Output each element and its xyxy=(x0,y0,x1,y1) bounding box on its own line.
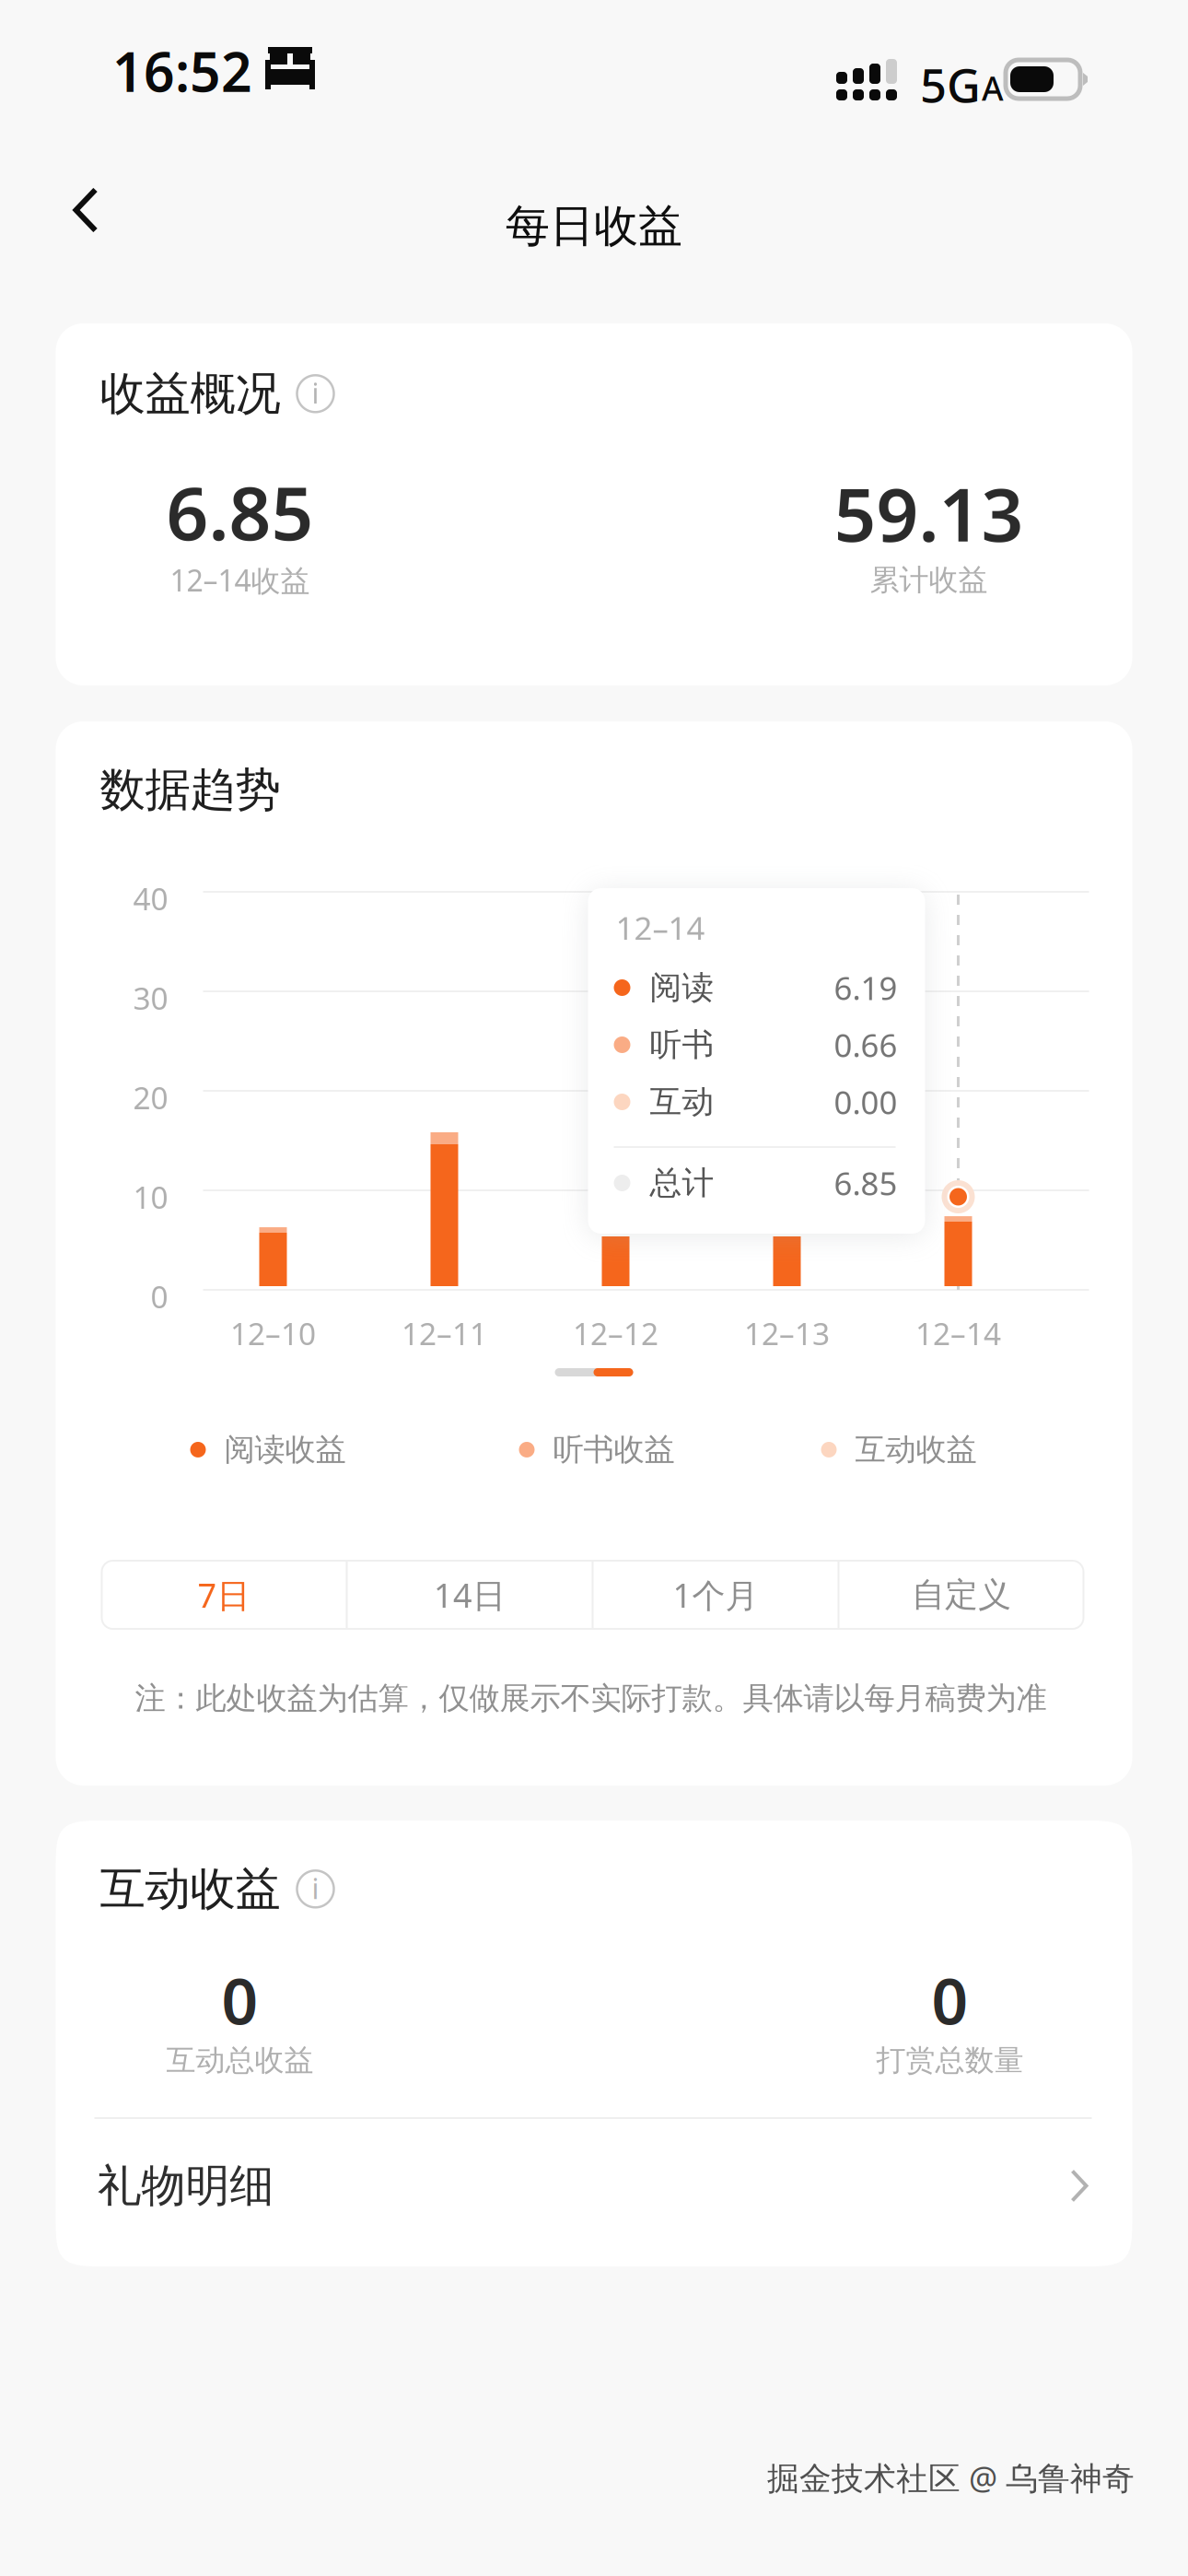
button[interactable]: 14日 xyxy=(348,1561,592,1629)
staticText: 礼物明细 xyxy=(97,2159,274,2213)
button[interactable]: 互动收益说明 xyxy=(297,1871,334,1907)
staticText: 每日收益 xyxy=(506,199,682,253)
staticText: 互动收益 xyxy=(100,1861,280,1917)
staticText: 总计 xyxy=(650,1163,714,1203)
staticText: 0 xyxy=(221,1957,258,2042)
staticText: 12–13 xyxy=(744,1313,830,1354)
staticText: 数据趋势 xyxy=(100,762,280,818)
staticText: 0 xyxy=(151,1276,168,1317)
button[interactable]: 7日 xyxy=(102,1561,346,1629)
staticText: 12–14收益 xyxy=(170,560,310,600)
staticText: 收益概况 xyxy=(100,366,280,422)
staticText: 0.66 xyxy=(834,1024,897,1066)
staticText: 打赏总数量 xyxy=(876,2042,1024,2078)
button[interactable]: 收益概况说明 xyxy=(297,375,334,412)
staticText: 59.13 xyxy=(834,464,1024,562)
staticText: 16:52 xyxy=(112,35,252,107)
staticText: 6.19 xyxy=(834,966,897,1009)
staticText: 0 xyxy=(932,1957,968,2042)
staticText: 12–12 xyxy=(573,1313,658,1354)
staticText: 阅读 xyxy=(650,968,714,1007)
staticText: 0.00 xyxy=(834,1081,897,1123)
staticText: 12–10 xyxy=(230,1313,316,1354)
button[interactable]: 礼物明细 xyxy=(56,2119,1132,2253)
staticText: 12–14 xyxy=(616,907,705,949)
staticText: 40 xyxy=(133,878,168,919)
staticText: 互动总收益 xyxy=(166,2042,314,2078)
staticText: 注：此处收益为估算，仅做展示不实际打款。具体请以每月稿费为准 xyxy=(135,1680,1047,1717)
staticText: 5G xyxy=(920,53,981,115)
staticText: 1个月 xyxy=(673,1573,758,1617)
button[interactable]: 返回 xyxy=(38,162,134,258)
staticText: 听书收益 xyxy=(553,1431,675,1468)
staticText: 12–11 xyxy=(402,1313,487,1354)
staticText: i xyxy=(312,374,319,411)
staticText: 累计收益 xyxy=(870,562,988,598)
staticText: 互动收益 xyxy=(855,1431,977,1468)
staticText: 30 xyxy=(133,978,168,1018)
staticText: 6.85 xyxy=(834,1162,897,1204)
staticText: 14日 xyxy=(434,1573,506,1617)
staticText: 阅读收益 xyxy=(224,1431,346,1468)
staticText: 掘金技术社区 @ 乌鲁神奇 xyxy=(767,2456,1135,2499)
staticText: 互动 xyxy=(650,1082,714,1122)
staticText: A xyxy=(982,66,1004,110)
staticText: 20 xyxy=(133,1077,168,1118)
staticText: i xyxy=(312,1869,319,1907)
staticText: 6.85 xyxy=(166,463,314,560)
staticText: 12–14 xyxy=(915,1313,1001,1354)
staticText: 10 xyxy=(133,1177,168,1217)
staticText: 听书 xyxy=(650,1025,714,1064)
staticText: 自定义 xyxy=(912,1574,1011,1615)
staticText: 7日 xyxy=(198,1573,250,1617)
button[interactable]: 自定义 xyxy=(839,1561,1083,1629)
button[interactable]: 1个月 xyxy=(594,1561,838,1629)
